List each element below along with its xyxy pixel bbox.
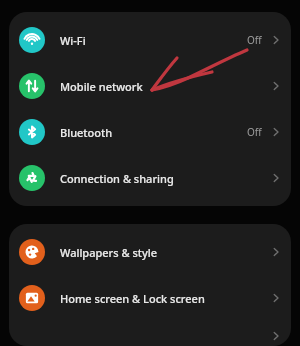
staticText: Off: [247, 125, 262, 139]
staticText: Wi-Fi: [60, 33, 247, 48]
button[interactable]: Bluetooth: [9, 109, 291, 155]
staticText: Home screen & Lock screen: [60, 291, 271, 306]
button[interactable]: Display & brightness: [9, 321, 291, 341]
staticText: Wallpapers & style: [60, 245, 271, 260]
staticText: Off: [247, 33, 262, 47]
staticText: Connection & sharing: [60, 171, 271, 186]
button[interactable]: Wi-Fi: [9, 17, 291, 63]
button[interactable]: Wallpapers & style: [9, 229, 291, 275]
staticText: Bluetooth: [60, 125, 247, 140]
staticText: Mobile network: [60, 79, 271, 94]
button[interactable]: Home screen & Lock screen: [9, 275, 291, 321]
button[interactable]: Connection & sharing: [9, 155, 291, 201]
button[interactable]: Mobile network: [9, 63, 291, 109]
